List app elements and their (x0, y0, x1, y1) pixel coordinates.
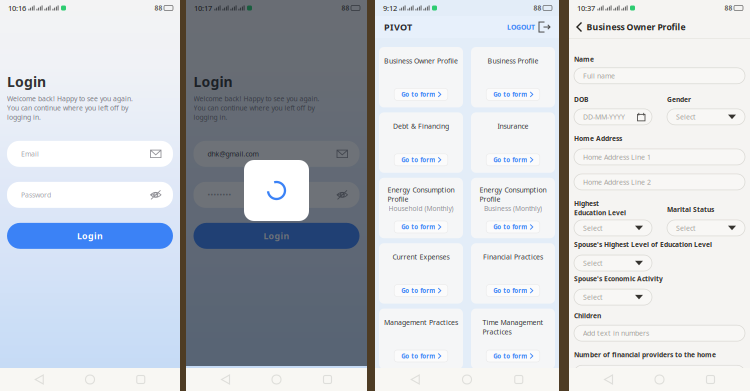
button[interactable]: Recent apps (699, 368, 721, 390)
button[interactable]: Go to form (394, 350, 448, 362)
staticText: Go to form (401, 352, 435, 360)
staticText: Select (676, 112, 696, 121)
button[interactable]: Home (648, 368, 671, 391)
button[interactable]: Recent apps (130, 368, 152, 390)
staticText: Debt & Financing (393, 121, 449, 131)
button[interactable]: Back (28, 368, 50, 391)
staticText: Children (574, 311, 601, 320)
staticText: Management Practices (384, 318, 458, 327)
staticText: Go to form (401, 286, 435, 295)
button[interactable] (574, 365, 745, 381)
staticText: Energy Consumption Profile (479, 185, 546, 204)
button[interactable]: Home Address Line 1 (574, 149, 745, 165)
staticText: Business (Monthly) (484, 204, 542, 213)
staticText: Go to form (493, 286, 527, 295)
button[interactable]: Recent apps (316, 368, 338, 390)
button[interactable]: Home (265, 368, 288, 391)
button[interactable]: Select (574, 255, 652, 271)
staticText: Household (Monthly) (388, 204, 453, 213)
staticText: Welcome back! Happy to see you again. Yo… (193, 94, 319, 122)
staticText: Home Address (574, 134, 622, 143)
staticText: 88 (724, 3, 732, 13)
staticText: 9:12 (383, 3, 397, 13)
staticText: Select (583, 292, 603, 302)
staticText: DOB (574, 95, 588, 104)
staticText: Select (583, 223, 603, 233)
staticText: Go to form (401, 90, 435, 99)
staticText: Login (193, 72, 232, 91)
staticText: Energy Consumption Profile (387, 185, 454, 204)
staticText: Go to form (401, 223, 435, 231)
button[interactable]: Go to form (394, 221, 448, 233)
staticText: Insurance (497, 121, 528, 131)
button[interactable]: Login (7, 223, 173, 249)
button[interactable]: Select (574, 289, 652, 305)
button[interactable]: Back (572, 17, 586, 36)
button[interactable]: Login (193, 223, 359, 249)
button[interactable]: Back (404, 368, 426, 391)
staticText: Spouse's Economic Activity (574, 274, 663, 283)
staticText: Home Address Line 2 (583, 177, 651, 187)
staticText: Go to form (401, 156, 435, 164)
button[interactable]: Go to form (486, 221, 540, 233)
button[interactable]: Recent apps (508, 368, 530, 390)
button[interactable]: Select (667, 220, 745, 236)
staticText: 10:37 (577, 3, 595, 13)
button[interactable]: Select (574, 220, 652, 236)
staticText: Business Profile (487, 56, 538, 65)
button[interactable]: Home Address Line 2 (574, 174, 745, 190)
button[interactable]: Home (78, 368, 101, 391)
button[interactable]: Go to form (486, 350, 540, 362)
staticText: Welcome back! Happy to see you again. Yo… (7, 94, 133, 122)
staticText: dhk@gmail.com (207, 149, 258, 158)
button[interactable]: Full name (574, 68, 745, 84)
staticText: Login (77, 230, 103, 242)
staticText: Email (21, 149, 39, 158)
staticText: Marital Status (667, 205, 714, 214)
button[interactable]: Go to form (394, 88, 448, 100)
staticText: Gender (667, 95, 691, 104)
button[interactable]: Go to form (394, 285, 448, 297)
staticText: Go to form (493, 90, 527, 99)
staticText: 88 (341, 3, 349, 13)
button[interactable]: LOGOUT (507, 22, 550, 32)
staticText: 10:16 (8, 3, 26, 13)
staticText: 88 (154, 3, 162, 13)
staticText: Select (676, 223, 696, 233)
staticText: Go to form (493, 352, 527, 360)
staticText: Business Owner Profile (384, 56, 458, 65)
button[interactable]: Select (667, 109, 745, 125)
staticText: DD-MM-YYYY (583, 112, 625, 121)
staticText: Financial Practices (483, 252, 543, 262)
staticText: 10:17 (194, 3, 212, 13)
button[interactable]: Go to form (486, 285, 540, 297)
button[interactable]: •••••••• (193, 182, 359, 208)
button[interactable]: Home (455, 368, 478, 391)
button[interactable]: Go to form (486, 154, 540, 166)
staticText: Go to form (493, 223, 527, 231)
staticText: Business Owner Profile (586, 21, 685, 33)
button[interactable]: DD-MM-YYYY (574, 109, 652, 125)
staticText: Name (574, 55, 594, 64)
staticText: •••••••• (207, 190, 231, 199)
staticText: Time Management Practices (482, 318, 543, 336)
staticText: Login (263, 230, 289, 242)
staticText: Full name (583, 71, 615, 80)
button[interactable]: Back (214, 368, 236, 391)
staticText: LOGOUT (507, 22, 535, 32)
staticText: Password (21, 190, 51, 199)
button[interactable]: Back (597, 368, 619, 391)
staticText: Go to form (493, 156, 527, 164)
staticText: Spouse's Highest Level of Education Leve… (574, 240, 712, 249)
button[interactable]: Password (7, 182, 173, 208)
staticText: Number of financial providers to the hom… (574, 350, 716, 359)
button[interactable]: Email (7, 141, 173, 167)
staticText: Highest Education Level (574, 199, 626, 217)
button[interactable]: Go to form (486, 88, 540, 100)
staticText: Login (7, 72, 46, 91)
staticText: Select (583, 258, 603, 268)
button[interactable]: Add text in numbers (574, 325, 745, 341)
button[interactable]: dhk@gmail.com (193, 141, 359, 167)
button[interactable]: Go to form (394, 154, 448, 166)
staticText: Add text in numbers (583, 328, 649, 338)
